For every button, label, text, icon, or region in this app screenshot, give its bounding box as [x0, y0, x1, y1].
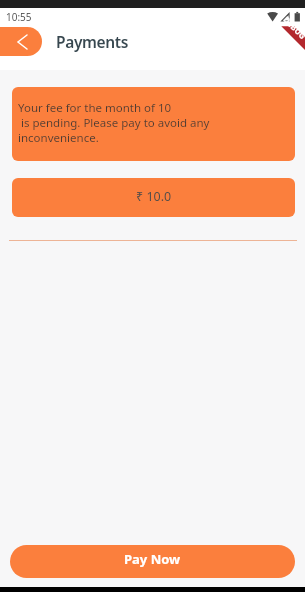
- staticText: ₹ 10.0: [136, 188, 172, 205]
- staticText: Pay Now: [124, 550, 181, 568]
- button[interactable]: Pay Now: [10, 545, 295, 578]
- staticText: Your fee for the month of 10 is pending.…: [18, 100, 210, 145]
- button[interactable]: ₹ 10.0: [12, 178, 295, 217]
- button[interactable]: Back: [0, 27, 42, 56]
- staticText: 10:55: [6, 10, 32, 24]
- staticText: DEBUG: [281, 14, 305, 41]
- staticText: Payments: [56, 31, 129, 52]
